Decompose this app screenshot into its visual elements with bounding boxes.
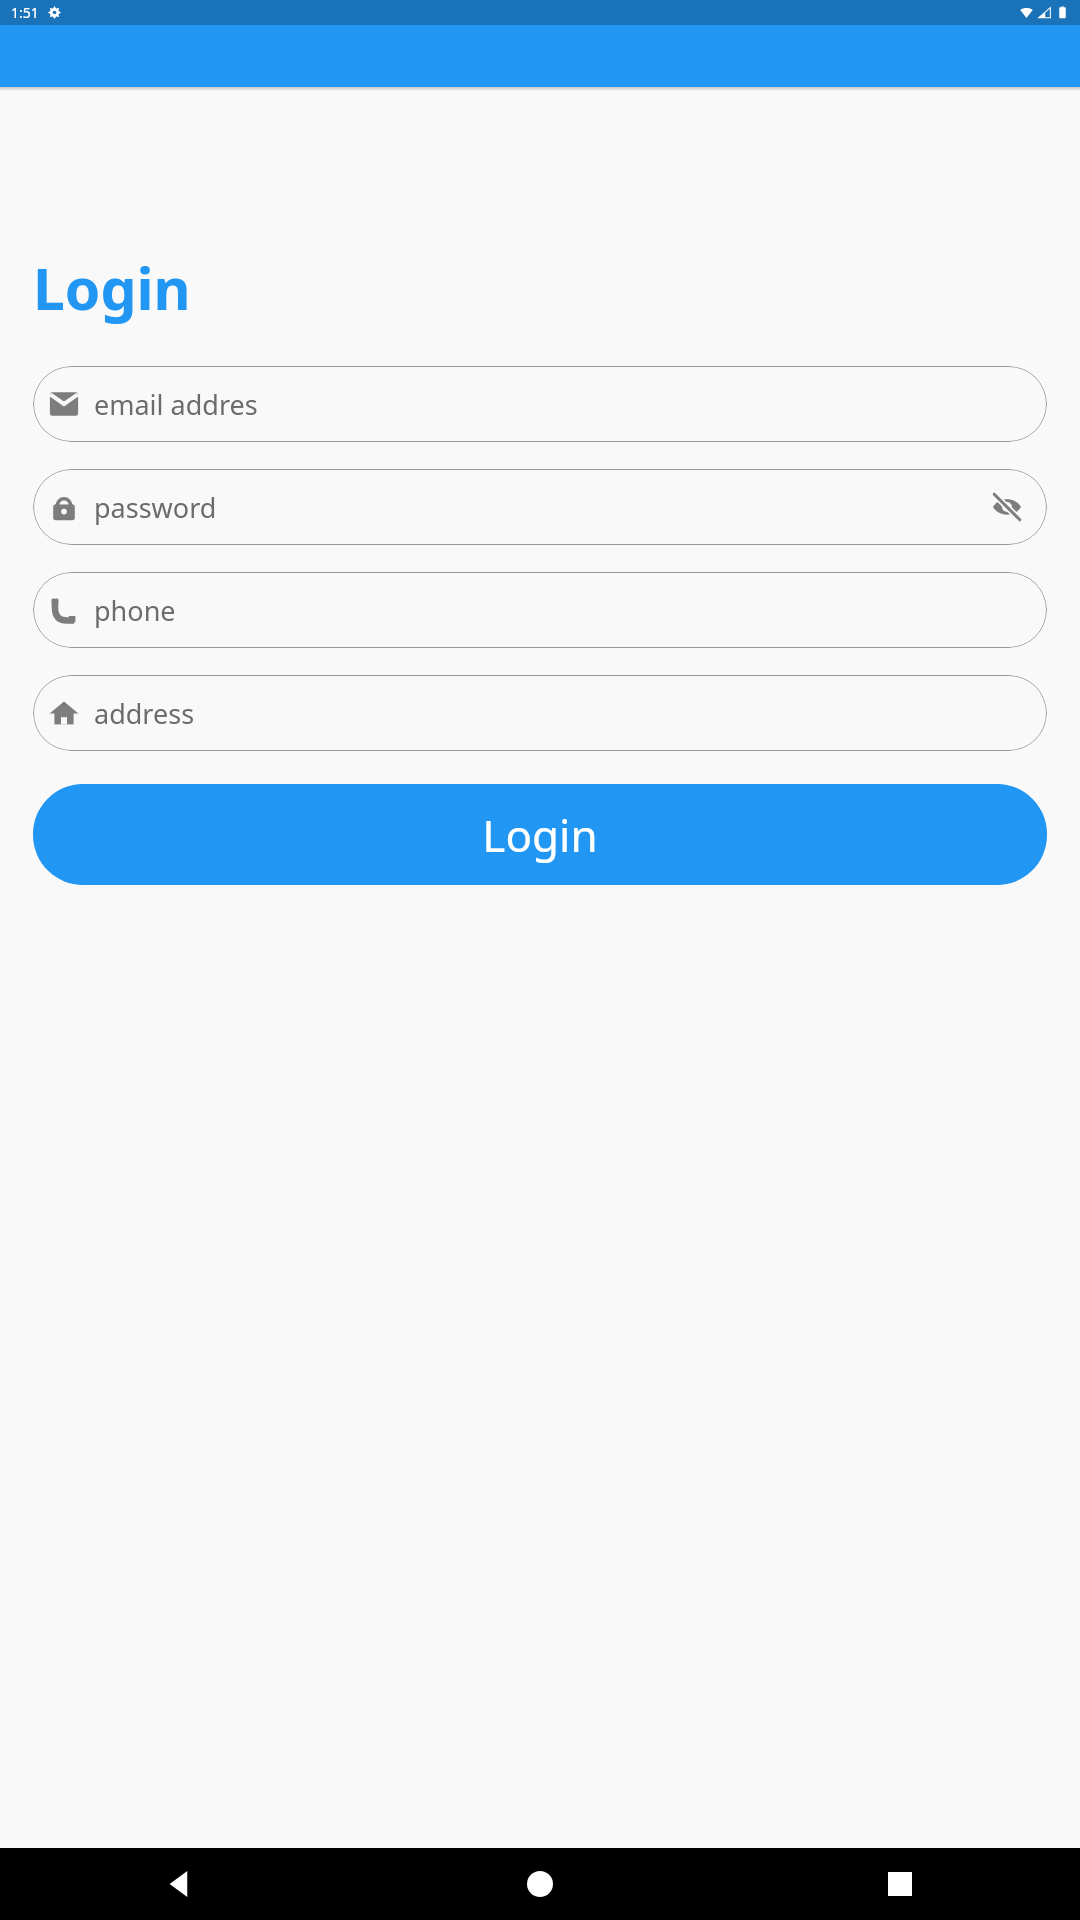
staticText: email addres	[94, 386, 1025, 423]
button[interactable]: address	[33, 675, 1047, 751]
staticText: Login	[482, 805, 598, 865]
button[interactable]: Recent apps	[720, 1848, 1080, 1920]
staticText: password	[94, 489, 989, 526]
staticText: Login	[33, 249, 191, 327]
button[interactable]: Home	[360, 1848, 720, 1920]
button[interactable]: Login	[33, 784, 1047, 885]
staticText: address	[94, 695, 1025, 732]
staticText: phone	[94, 592, 1025, 629]
button[interactable]: phone	[33, 572, 1047, 648]
button[interactable]: password	[33, 469, 1047, 545]
button[interactable]: email addres	[33, 366, 1047, 442]
button[interactable]: Show password	[989, 489, 1025, 525]
staticText: 1:51	[11, 3, 39, 22]
button[interactable]: Back	[0, 1848, 360, 1920]
